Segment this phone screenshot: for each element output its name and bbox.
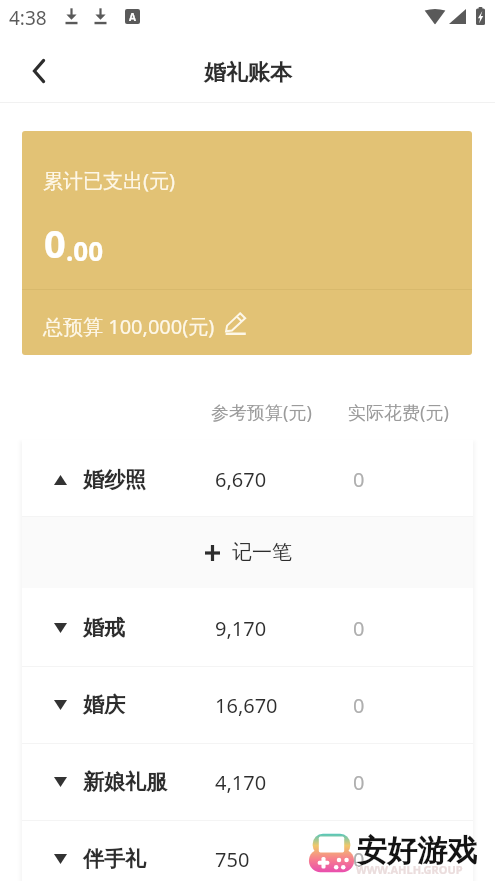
button[interactable]: 婚纱照 [22,443,473,516]
button[interactable]: 记一笔 [22,517,473,588]
staticText: 0 [353,846,365,873]
staticText: A [129,10,136,24]
staticText: WWW.AHLH.GROUP [356,862,463,877]
staticText: 累计已支出(元) [43,167,175,194]
staticText: 参考预算(元) [211,400,312,425]
staticText: 实际花费(元) [348,400,449,425]
staticText: 0 [353,466,365,493]
staticText: 婚纱照 [83,467,146,493]
staticText: 总预算 100,000(元) [43,313,215,340]
button[interactable]: 伴手礼 [22,821,473,881]
staticText: 伴手礼 [83,846,146,872]
button[interactable]: Back [19,50,61,92]
staticText: 0 [353,692,365,719]
staticText: 0 [353,769,365,796]
staticText: 16,670 [215,692,278,719]
staticText: 0 [353,615,365,642]
staticText: 750 [215,846,250,873]
staticText: .00 [66,233,104,268]
button[interactable]: Edit total budget [220,308,250,338]
button[interactable]: 婚庆 [22,667,473,743]
staticText: 婚戒 [83,615,125,641]
staticText: 婚庆 [83,692,125,718]
staticText: 4:38 [9,5,47,31]
button[interactable]: 新娘礼服 [22,744,473,820]
staticText: 新娘礼服 [83,769,167,795]
staticText: 0 [44,217,66,269]
staticText: 9,170 [215,615,267,642]
staticText: 安好游戏 [357,832,477,870]
staticText: 婚礼账本 [204,59,292,87]
staticText: 6,670 [215,466,267,493]
staticText: 记一笔 [232,540,292,565]
staticText: 4,170 [215,769,267,796]
button[interactable]: 婚戒 [22,590,473,666]
